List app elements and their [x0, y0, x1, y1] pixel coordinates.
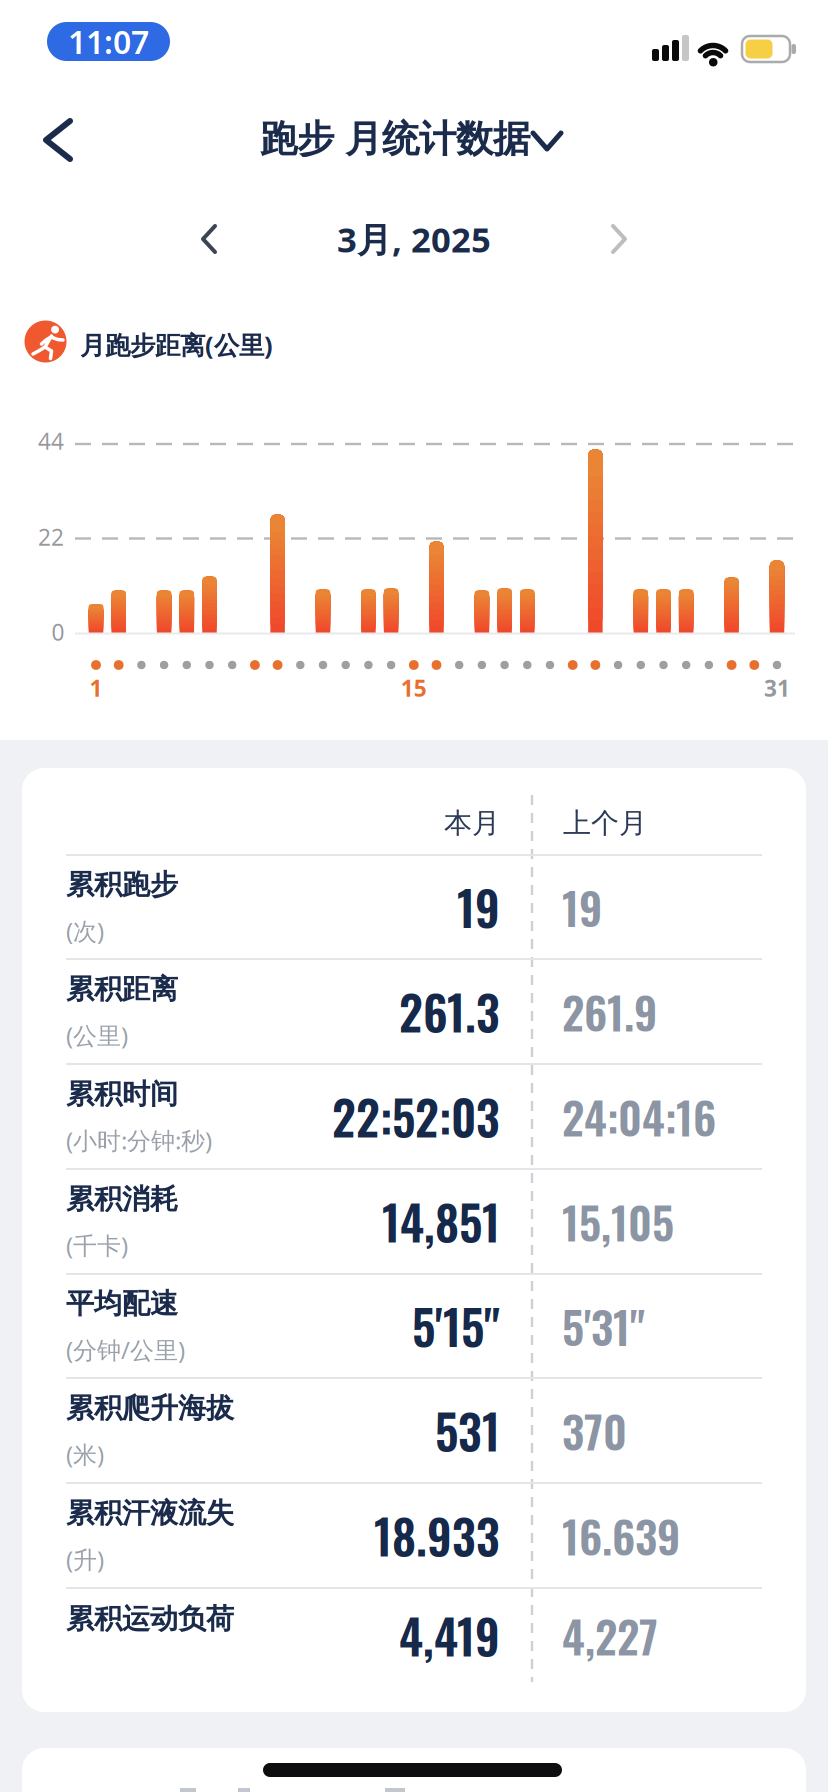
staticText: 4,227: [562, 1603, 658, 1668]
staticText: 531: [435, 1396, 500, 1465]
staticText: 19: [457, 872, 500, 942]
button[interactable]: 跑步 月统计数据: [258, 117, 570, 161]
staticText: 平均配速: [66, 1286, 178, 1321]
staticText: 本月: [444, 806, 500, 840]
staticText: (升): [66, 1543, 104, 1575]
staticText: 累积运动负荷: [66, 1602, 234, 1636]
staticText: (小时:分钟:秒): [66, 1124, 212, 1156]
staticText: 11:07: [68, 20, 149, 63]
staticText: 24:04:16: [562, 1084, 716, 1149]
staticText: 261.9: [562, 979, 657, 1044]
staticText: (分钟/公里): [66, 1334, 185, 1366]
staticText: 44: [38, 426, 64, 456]
staticText: 18.933: [374, 1501, 500, 1570]
staticText: 5'15": [412, 1291, 500, 1361]
staticText: 累积时间: [66, 1077, 178, 1111]
staticText: 19: [562, 874, 602, 940]
staticText: 15: [401, 673, 427, 703]
staticText: 累积消耗: [66, 1182, 178, 1216]
staticText: 31: [764, 673, 790, 703]
staticText: 3月, 2025: [337, 216, 491, 262]
staticText: (千卡): [66, 1229, 128, 1261]
staticText: 22: [38, 522, 64, 552]
button[interactable]: Previous month: [199, 224, 221, 254]
staticText: 跑步 月统计数据: [260, 116, 530, 162]
staticText: 15,105: [562, 1189, 674, 1254]
button[interactable]: Next month: [608, 224, 630, 254]
staticText: 月跑步距离(公里): [80, 328, 273, 362]
staticText: 上个月: [563, 806, 647, 840]
staticText: 14,851: [382, 1187, 500, 1256]
staticText: 累积爬升海拔: [66, 1391, 234, 1425]
staticText: 4,419: [399, 1601, 500, 1670]
staticText: 5'31": [562, 1293, 645, 1359]
staticText: (次): [66, 915, 104, 947]
staticText: 370: [562, 1398, 627, 1463]
staticText: 22:52:03: [332, 1082, 500, 1151]
button[interactable]: Back: [40, 118, 76, 162]
staticText: 0: [51, 617, 64, 647]
staticText: 累积跑步: [66, 867, 178, 902]
staticText: 累积汗液流失: [66, 1496, 234, 1530]
staticText: 1: [89, 673, 102, 703]
staticText: (公里): [66, 1019, 128, 1051]
staticText: 累积距离: [66, 972, 178, 1006]
staticText: 16.639: [562, 1503, 680, 1568]
staticText: (米): [66, 1438, 104, 1470]
staticText: 261.3: [399, 977, 500, 1046]
